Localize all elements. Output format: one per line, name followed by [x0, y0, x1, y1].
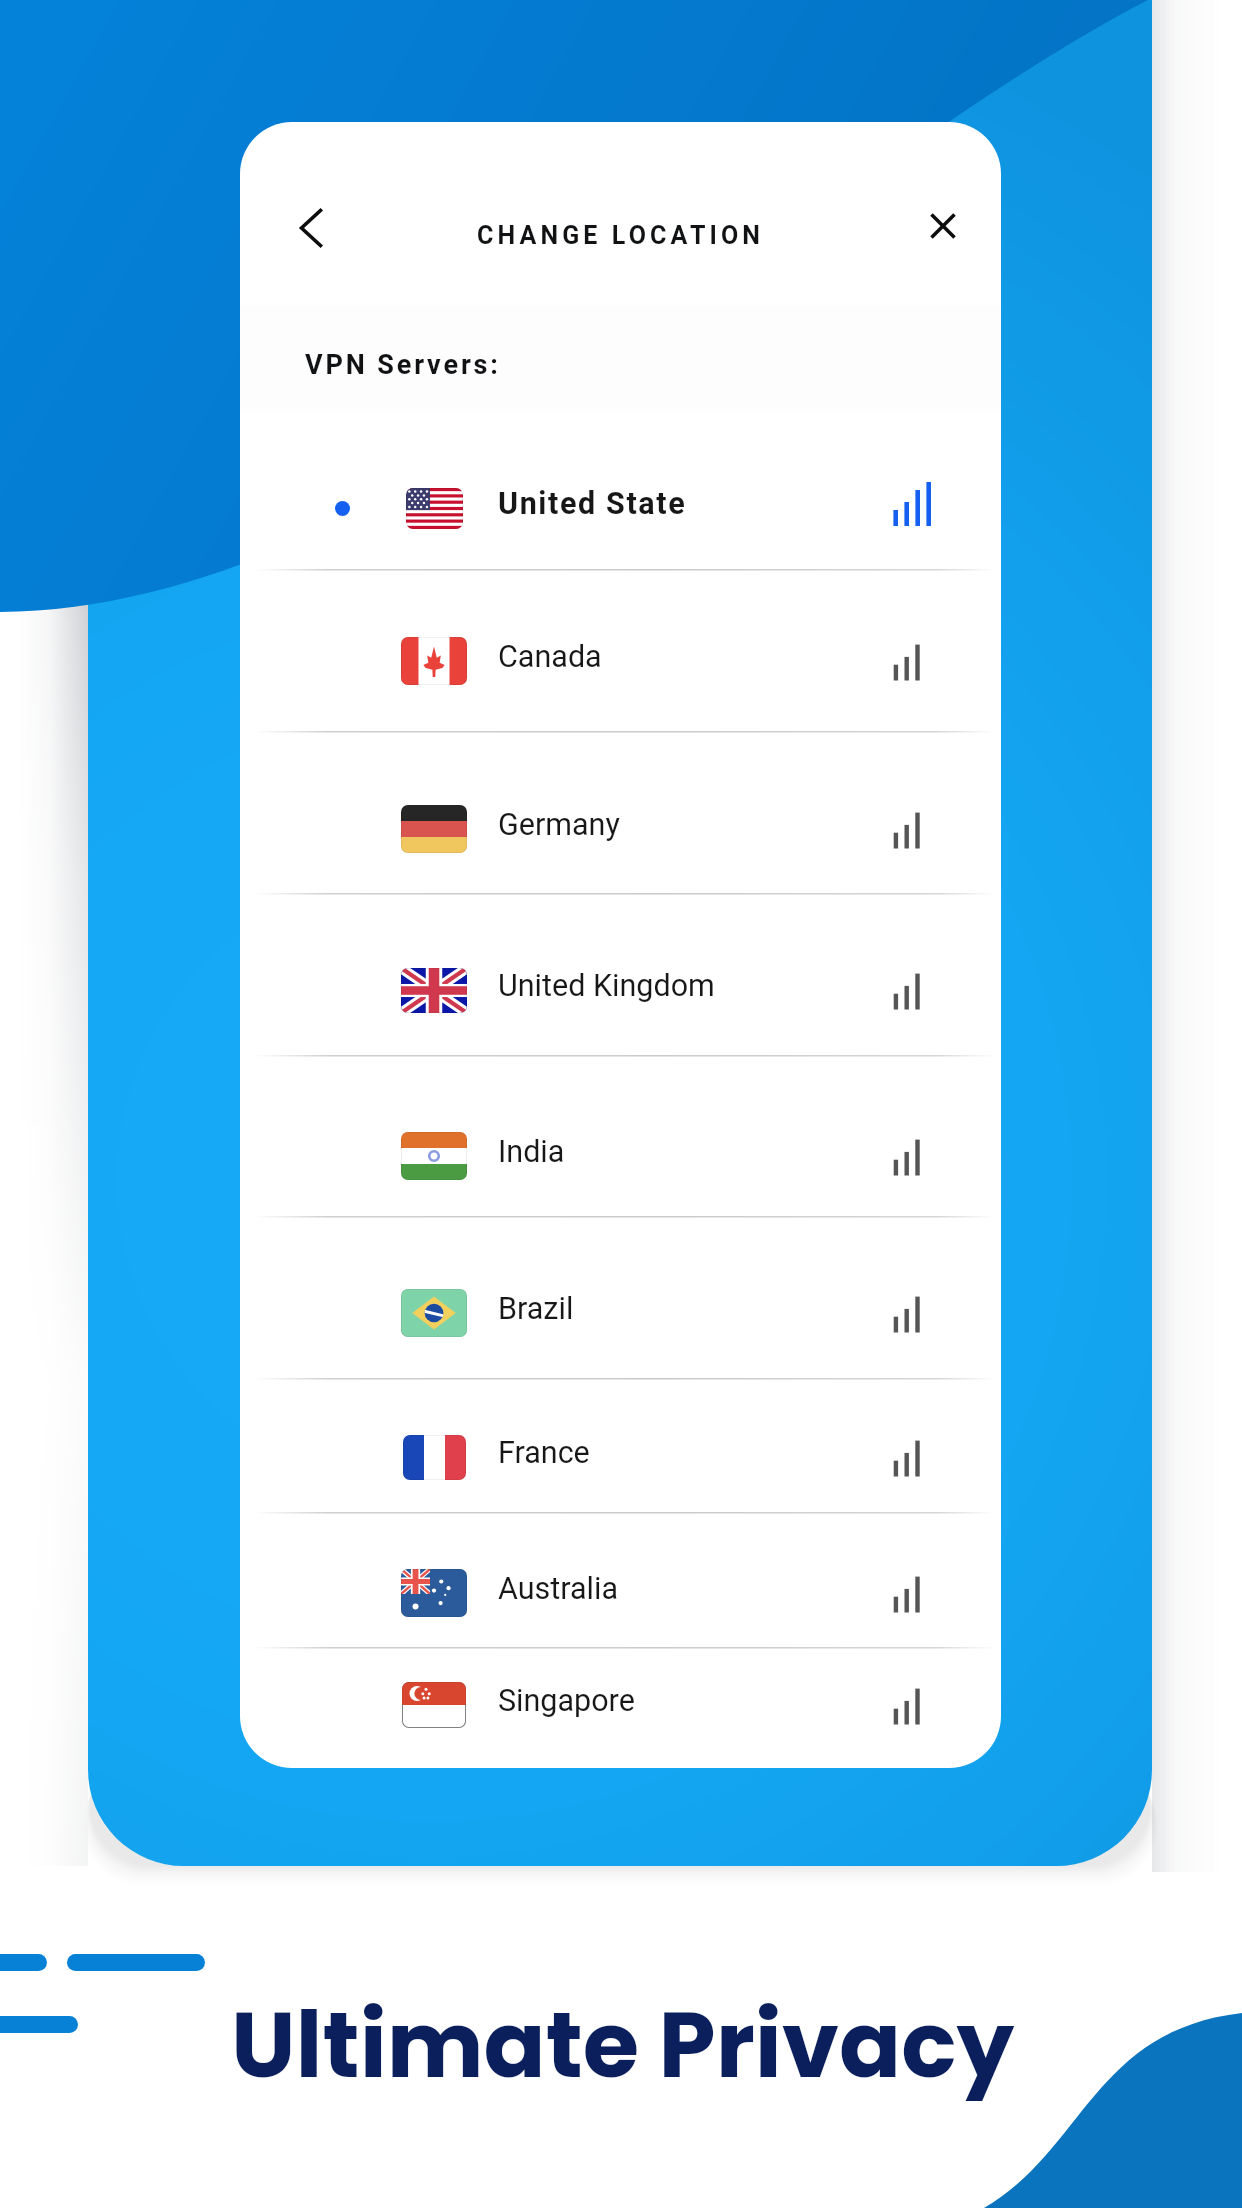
button[interactable] — [240, 410, 1001, 569]
button[interactable]: Close — [913, 196, 973, 256]
staticText: United State — [498, 486, 687, 522]
staticText: Germany — [498, 807, 620, 843]
button[interactable] — [240, 1216, 1001, 1378]
staticText: CHANGE LOCATION — [477, 221, 765, 250]
button[interactable] — [240, 1512, 1001, 1647]
button[interactable] — [240, 569, 1001, 731]
button[interactable] — [240, 731, 1001, 893]
staticText: Canada — [498, 639, 602, 675]
staticText: Australia — [498, 1571, 619, 1607]
button[interactable] — [240, 1378, 1001, 1512]
button[interactable] — [240, 893, 1001, 1055]
staticText: France — [498, 1435, 590, 1471]
staticText: VPN Servers: — [305, 349, 501, 381]
button[interactable]: Back — [280, 198, 340, 258]
staticText: United Kingdom — [498, 968, 715, 1004]
staticText: Singapore — [498, 1683, 635, 1719]
button[interactable] — [240, 1647, 1001, 1768]
button[interactable] — [240, 1055, 1001, 1216]
staticText: India — [498, 1134, 565, 1170]
staticText: Brazil — [498, 1291, 574, 1327]
staticText: Ultimate Privacy — [231, 1981, 1015, 2109]
